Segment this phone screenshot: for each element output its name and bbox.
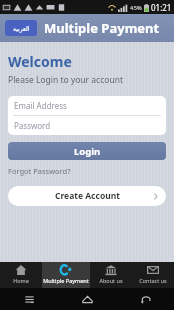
button[interactable]: Login <box>8 142 166 160</box>
button[interactable]: Forgot Password? <box>8 166 71 176</box>
staticText: العربية <box>13 25 30 32</box>
button[interactable]: Back <box>116 288 174 310</box>
button[interactable]: Home <box>0 262 42 288</box>
staticText: 45% <box>130 4 142 12</box>
button[interactable]: Contact us <box>132 262 174 288</box>
staticText: About us <box>99 277 123 284</box>
staticText: Home <box>13 277 29 284</box>
staticText: Email Address <box>14 100 67 111</box>
button[interactable]: Home <box>58 288 116 310</box>
staticText: Welcome <box>8 52 72 71</box>
staticText: Password <box>14 120 51 131</box>
button[interactable]: Password <box>8 116 166 135</box>
button[interactable]: Multiple Payment <box>42 262 90 288</box>
staticText: Please Login to your account <box>8 74 123 86</box>
staticText: Create Account <box>55 190 120 202</box>
button[interactable]: Menu <box>0 288 58 310</box>
button[interactable]: Create Account <box>8 186 166 206</box>
staticText: Login <box>74 145 101 158</box>
staticText: Contact us <box>139 277 167 284</box>
button[interactable]: Arabic language <box>5 20 37 36</box>
staticText: Forgot Password? <box>8 166 71 176</box>
staticText: Multiple Payment <box>44 19 160 37</box>
button[interactable]: Email Address <box>8 96 166 115</box>
staticText: 01:21 <box>151 2 172 13</box>
button[interactable]: About us <box>90 262 132 288</box>
staticText: Multiple Payment <box>43 277 89 284</box>
